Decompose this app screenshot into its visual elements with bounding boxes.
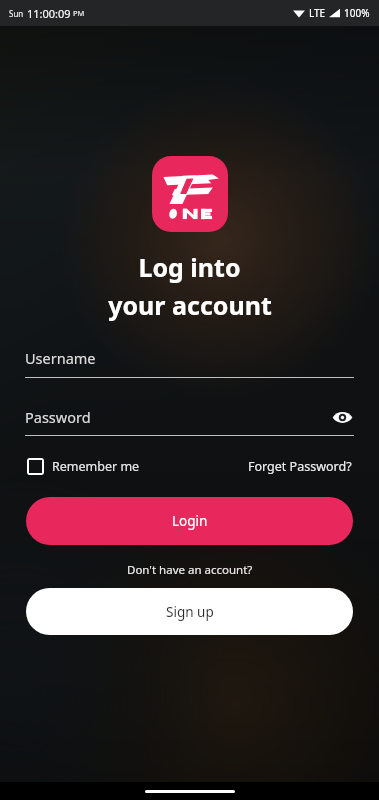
button[interactable]: Username	[25, 348, 354, 378]
staticText: Forget Password?	[248, 458, 352, 475]
button[interactable]: Sign up	[26, 588, 353, 635]
staticText: Sun	[9, 8, 24, 19]
staticText: Username	[25, 348, 96, 368]
staticText: 11:00:09	[27, 6, 71, 21]
button[interactable]: Login	[26, 497, 353, 545]
staticText: Sign up	[166, 603, 214, 621]
staticText: Don't have an account?	[127, 562, 253, 578]
staticText: LTE	[309, 6, 326, 20]
staticText: Remember me	[52, 458, 140, 475]
staticText: Login	[172, 512, 208, 530]
staticText: PM	[73, 8, 85, 18]
staticText: Password	[25, 407, 91, 427]
staticText: Log into	[138, 250, 241, 284]
staticText: 100%	[344, 6, 370, 20]
button[interactable]: Password	[25, 405, 354, 436]
staticText: your account	[108, 288, 272, 322]
button[interactable]: App logo	[152, 156, 228, 232]
button[interactable]: Remember me	[27, 458, 140, 475]
button[interactable]: Forget Password?	[248, 458, 352, 475]
button[interactable]: Show password	[330, 405, 354, 429]
